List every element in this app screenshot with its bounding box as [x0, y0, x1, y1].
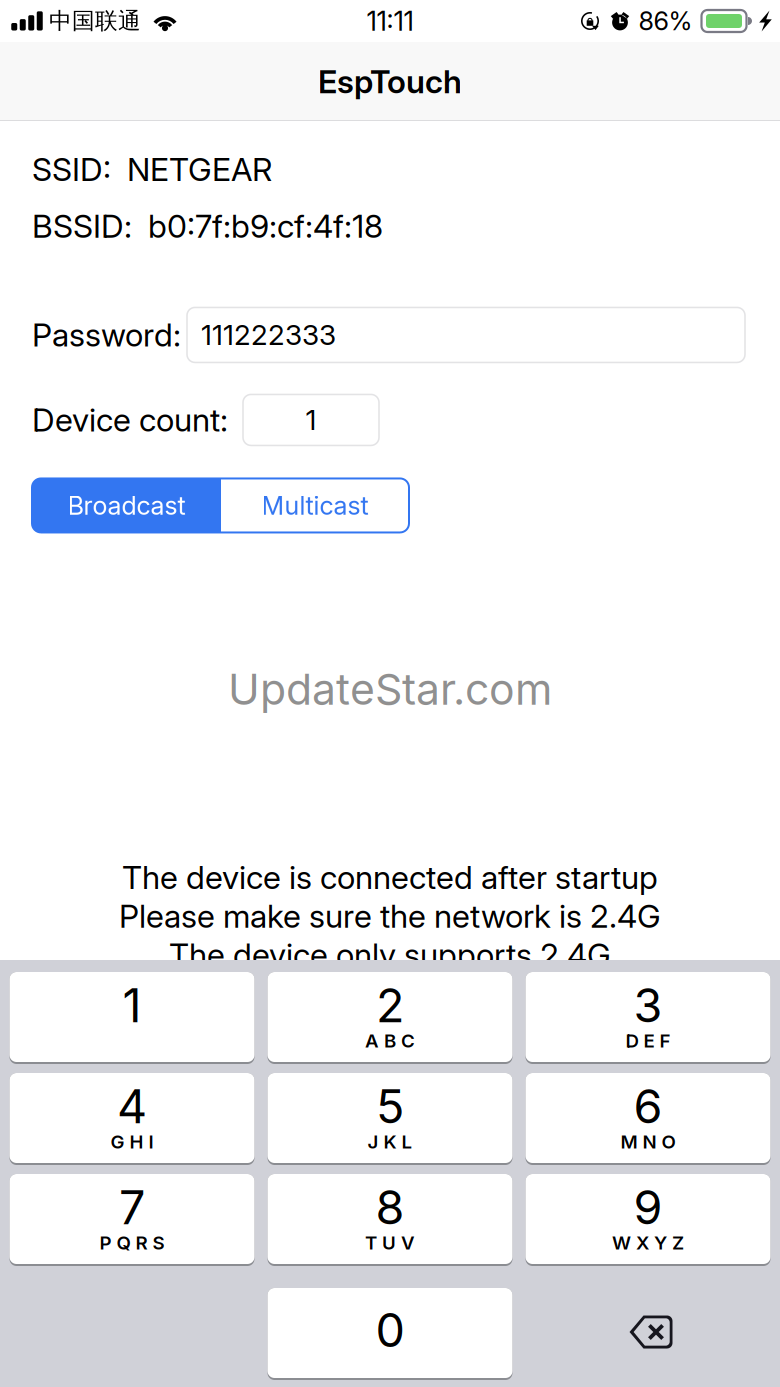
button[interactable]: 4	[9, 1073, 254, 1163]
staticText: BSSID: b0:7f:b9:cf:4f:18	[32, 207, 383, 245]
staticText: 7	[119, 1179, 145, 1235]
staticText: M N O	[620, 1130, 675, 1153]
staticText: Multicast	[261, 490, 368, 521]
button[interactable]: 111222333	[187, 307, 745, 362]
staticText: G H I	[110, 1130, 153, 1153]
staticText: 1	[305, 403, 316, 437]
staticText: 86%	[638, 6, 692, 36]
staticText: 11:11	[366, 5, 413, 37]
staticText: 2	[376, 977, 404, 1033]
button[interactable]: 0	[267, 1288, 512, 1378]
staticText: A B C	[365, 1029, 415, 1052]
button[interactable]: Multicast	[221, 478, 409, 532]
staticText: Broadcast	[67, 490, 185, 521]
staticText: 1	[122, 977, 141, 1033]
staticText: SSID: NETGEAR	[32, 150, 272, 189]
staticText: 6	[633, 1078, 662, 1134]
staticText: 4	[117, 1078, 147, 1134]
staticText: The device only supports 2.4G	[169, 935, 611, 974]
staticText: The device is connected after startup	[122, 858, 658, 897]
staticText: 5	[376, 1078, 404, 1134]
button[interactable]: 1	[9, 972, 254, 1062]
button[interactable]: Delete	[525, 1288, 770, 1378]
button[interactable]: Broadcast	[32, 478, 221, 532]
button[interactable]: 2	[267, 972, 512, 1062]
staticText: 0	[375, 1302, 404, 1358]
staticText: J K L	[367, 1130, 412, 1153]
staticText: UpdateStar.com	[228, 663, 552, 715]
staticText: 3	[633, 977, 662, 1033]
staticText: Device count:	[32, 401, 228, 439]
staticText: 中国联通	[49, 7, 141, 35]
button[interactable]: 7	[9, 1174, 254, 1264]
staticText: 8	[375, 1179, 404, 1235]
button[interactable]: 8	[267, 1174, 512, 1264]
staticText: 9	[633, 1179, 662, 1235]
staticText: 111222333	[201, 318, 336, 352]
staticText: T U V	[365, 1231, 415, 1254]
button[interactable]: 5	[267, 1073, 512, 1163]
staticText: W X Y Z	[612, 1231, 684, 1254]
staticText: D E F	[625, 1029, 670, 1052]
button[interactable]: 9	[525, 1174, 770, 1264]
button[interactable]: 1	[243, 394, 379, 445]
staticText: Please make sure the network is 2.4G	[119, 897, 661, 935]
button[interactable]: 3	[525, 972, 770, 1062]
button[interactable]: 6	[525, 1073, 770, 1163]
staticText: Password:	[32, 316, 181, 354]
staticText: EspTouch	[318, 62, 462, 101]
staticText: P Q R S	[99, 1231, 164, 1254]
